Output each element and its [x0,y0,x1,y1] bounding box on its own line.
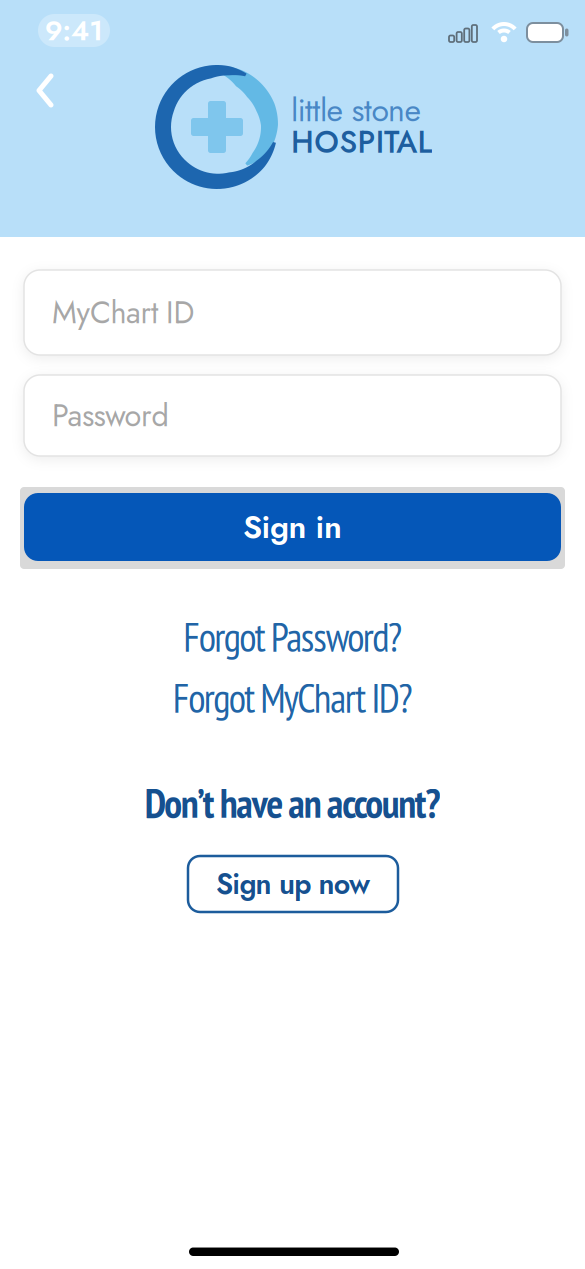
staticText: HOSPITAL [291,120,432,164]
staticText: Password [52,393,168,438]
button[interactable]: Forgot Password? [0,611,585,663]
staticText: Forgot MyChart ID? [173,672,412,724]
staticText: little stone [291,87,420,133]
staticText: 9:41 [45,10,103,51]
button[interactable]: MyChart ID [24,270,561,355]
button[interactable]: Password [24,375,561,456]
button[interactable]: Sign in [24,493,561,561]
staticText: Sign in [243,504,342,550]
staticText: Don’t have an account? [145,777,440,829]
staticText: Forgot Password? [183,611,402,663]
staticText: Sign up now [216,863,370,905]
staticText: MyChart ID [52,290,194,335]
button[interactable] [20,68,64,112]
button[interactable]: Sign up now [188,856,398,912]
button[interactable]: Forgot MyChart ID? [0,672,585,724]
